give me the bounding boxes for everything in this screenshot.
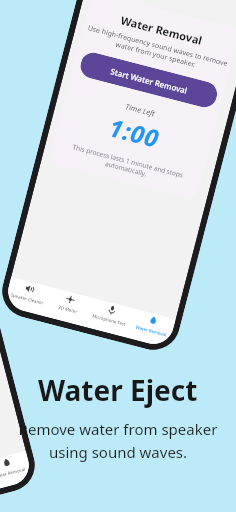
button[interactable]: 3D Meter	[44, 287, 92, 327]
staticText: Time Left	[124, 101, 157, 119]
button[interactable]: Water Removal	[127, 309, 176, 348]
staticText: Water Removal	[135, 324, 167, 337]
staticText: 1:00	[106, 110, 163, 155]
staticText: Water Removal	[0, 466, 26, 479]
button[interactable]: Speaker Cleaner	[4, 277, 52, 316]
staticText: Start Water Removal	[109, 65, 189, 96]
button[interactable]: Microphone Test	[85, 298, 134, 338]
staticText: Water Removal	[119, 12, 204, 48]
button[interactable]: Water Removal	[0, 451, 33, 491]
staticText: This process lasts 1 minute and stops au…	[70, 142, 184, 187]
button[interactable]: Start Water Removal	[78, 50, 220, 110]
staticText: Water Eject	[38, 371, 198, 409]
staticText: Speaker Cleaner	[10, 291, 44, 306]
staticText: Use high-frequency sound waves to remove…	[85, 23, 228, 77]
staticText: Remove water from speaker using sound wa…	[0, 419, 236, 462]
staticText: 3D Meter	[57, 304, 78, 314]
staticText: Microphone Test	[91, 312, 127, 327]
